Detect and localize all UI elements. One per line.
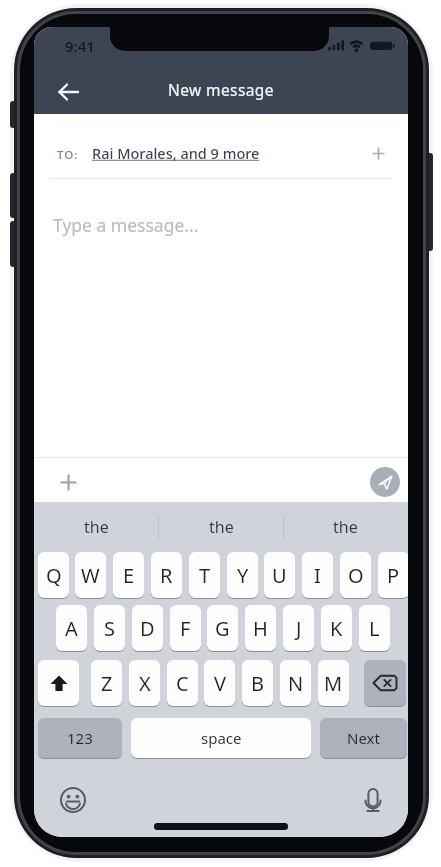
staticText: the [209,516,234,538]
button[interactable]: S [94,605,125,651]
button[interactable]: Rai Morales, and 9 more [90,141,262,165]
staticText: L [369,615,380,642]
staticText: the [333,516,358,538]
button[interactable]: X [129,660,160,706]
staticText: R [160,562,173,589]
button[interactable] [59,786,87,814]
button[interactable] [365,140,391,166]
staticText: A [65,615,78,642]
button[interactable]: B [242,660,273,706]
button[interactable] [370,467,400,497]
button[interactable] [359,786,387,814]
staticText: G [215,615,230,642]
staticText: F [180,615,191,642]
staticText: space [201,728,242,748]
button[interactable]: 123 [38,718,122,758]
staticText: C [176,670,189,697]
staticText: V [214,670,226,697]
staticText: Q [46,562,62,589]
staticText: TO: [57,147,79,163]
staticText: 9:41 [65,36,95,56]
button[interactable] [364,660,406,706]
button[interactable]: I [302,552,333,598]
button[interactable]: G [207,605,238,651]
button[interactable]: J [283,605,314,651]
button[interactable]: L [359,605,390,651]
button[interactable]: Y [227,552,258,598]
button[interactable]: Z [91,660,122,706]
button[interactable]: P [378,552,408,598]
staticText: M [324,670,343,697]
staticText: D [140,615,155,642]
staticText: T [199,562,211,589]
button[interactable]: E [113,552,144,598]
staticText: Y [237,562,249,589]
staticText: S [104,615,115,642]
button[interactable]: space [131,718,311,758]
button[interactable] [46,70,90,114]
button[interactable]: A [56,605,87,651]
button[interactable]: K [321,605,352,651]
button[interactable]: T [189,552,220,598]
staticText: Z [101,670,113,697]
staticText: Next [347,728,380,748]
staticText: I [314,562,321,589]
button[interactable]: the [283,502,408,552]
button[interactable]: Next [320,718,407,758]
staticText: W [81,562,100,589]
button[interactable]: the [159,502,284,552]
staticText: P [387,562,400,589]
button[interactable] [38,660,79,706]
staticText: Rai Morales, and 9 more [92,143,260,163]
staticText: J [296,615,302,642]
staticText: O [348,562,364,589]
button[interactable]: C [167,660,198,706]
staticText: X [139,670,151,697]
button[interactable]: F [170,605,201,651]
button[interactable]: Q [38,552,69,598]
button[interactable]: D [132,605,163,651]
button[interactable]: U [264,552,295,598]
button[interactable]: H [245,605,276,651]
staticText: Type a message... [53,213,199,237]
button[interactable]: W [75,552,106,598]
button[interactable]: O [340,552,371,598]
button[interactable]: V [204,660,235,706]
button[interactable]: M [318,660,349,706]
staticText: 123 [67,728,93,748]
button[interactable]: N [280,660,311,706]
staticText: K [330,615,343,642]
staticText: B [251,670,264,697]
staticText: N [288,670,304,697]
staticText: E [123,562,135,589]
button[interactable] [54,468,82,496]
staticText: U [272,562,287,589]
staticText: H [253,615,268,642]
button[interactable]: the [34,502,159,552]
button[interactable]: R [151,552,182,598]
staticText: the [84,516,109,538]
staticText: New message [168,79,274,100]
